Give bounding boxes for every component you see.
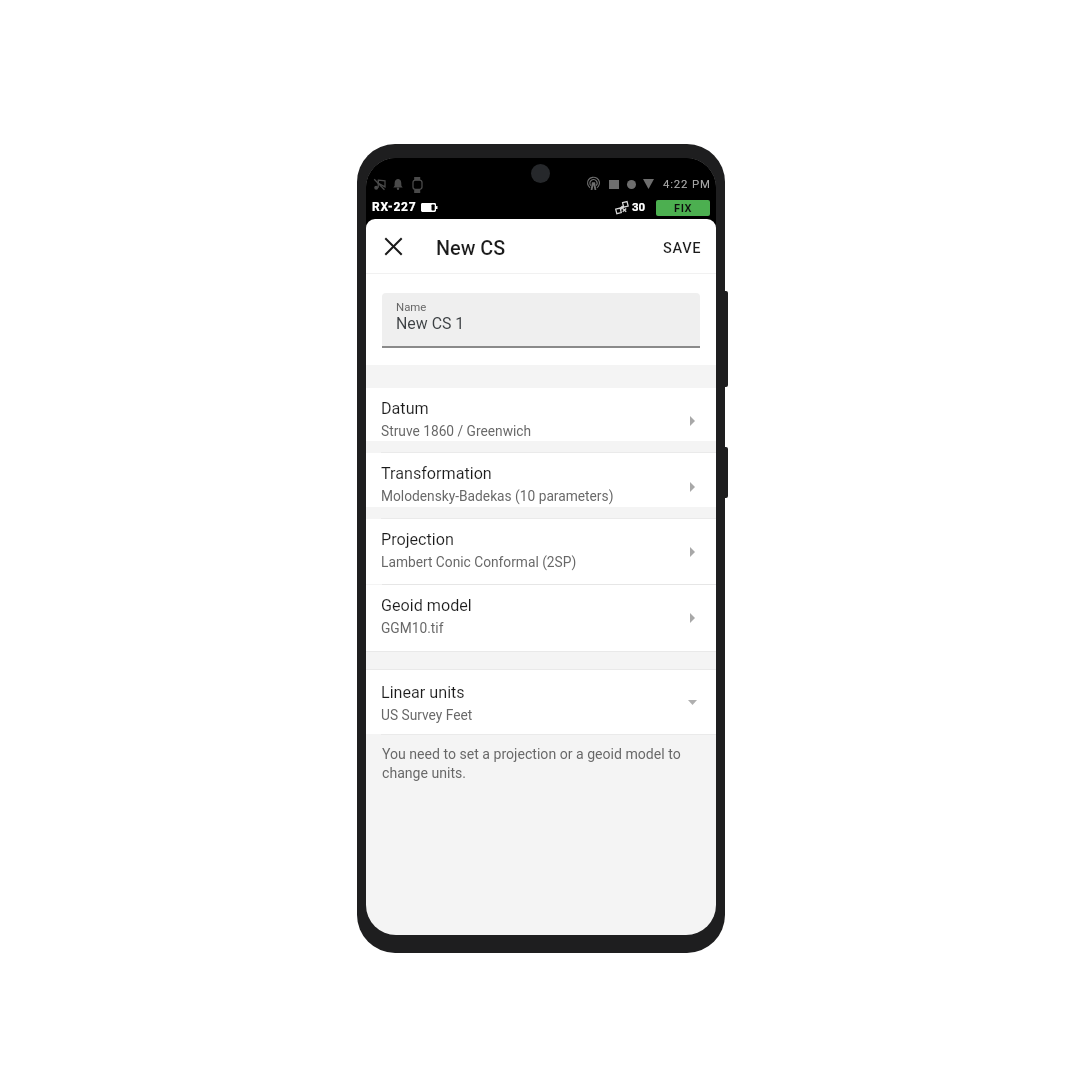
button[interactable]: Datum [366,388,716,454]
staticText: New CS [436,237,506,260]
staticText: RX-227 [372,200,417,214]
staticText: Name [396,300,427,313]
button[interactable]: Projection [366,519,716,585]
button[interactable]: FIX [656,200,710,216]
button[interactable]: Close [371,224,415,268]
staticText: You need to set a projection or a geoid … [382,746,694,782]
button[interactable]: Name [382,293,700,346]
staticText: 4:22 PM [663,177,711,190]
staticText: US Survey Feet [381,707,473,723]
button[interactable]: Transformation [366,453,716,519]
staticText: Molodensky-Badekas (10 parameters) [381,488,614,504]
button[interactable]: Geoid model [366,585,716,651]
staticText: 30 [632,200,646,213]
staticText: New CS 1 [396,314,465,333]
staticText: Projection [381,530,454,549]
staticText: FIX [674,202,693,215]
staticText: Lambert Conic Conformal (2SP) [381,554,577,570]
button[interactable]: Linear units [366,672,716,738]
staticText: Struve 1860 / Greenwich [381,423,532,439]
button[interactable]: SAVE [654,225,710,269]
staticText: SAVE [663,239,702,256]
staticText: Datum [381,399,429,418]
staticText: Linear units [381,683,465,702]
staticText: Transformation [381,464,492,483]
staticText: Geoid model [381,596,472,615]
staticText: GGM10.tif [381,620,444,636]
